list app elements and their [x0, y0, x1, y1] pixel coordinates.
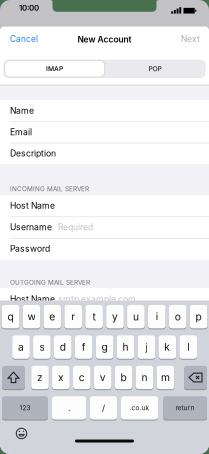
- button[interactable]: .co.uk: [121, 396, 158, 420]
- button[interactable]: w: [23, 304, 40, 329]
- staticText: r: [71, 310, 75, 323]
- staticText: p: [196, 310, 202, 323]
- staticText: 123: [19, 404, 30, 412]
- button[interactable]: u: [127, 304, 145, 329]
- button[interactable]: i: [148, 304, 166, 329]
- staticText: n: [141, 371, 147, 384]
- staticText: INCOMING MAIL SERVER: [10, 185, 89, 193]
- staticText: y: [112, 310, 118, 323]
- button[interactable]: 123: [2, 396, 48, 420]
- button[interactable]: b: [115, 365, 132, 390]
- button[interactable]: Username: [0, 0, 42, 11]
- button[interactable]: k: [158, 335, 176, 359]
- staticText: v: [100, 371, 106, 384]
- staticText: OUTGOING MAIL SERVER: [10, 279, 90, 286]
- staticText: h: [122, 341, 128, 353]
- button[interactable]: f: [75, 335, 92, 359]
- staticText: Email: [10, 127, 32, 137]
- staticText: POP: [148, 65, 161, 73]
- staticText: Username: [10, 222, 52, 232]
- staticText: .co.uk: [129, 404, 149, 412]
- button[interactable]: Delete: [184, 365, 207, 390]
- staticText: 10:00: [19, 3, 39, 13]
- staticText: smtp.example.com: [58, 294, 136, 304]
- staticText: i: [156, 310, 158, 323]
- button[interactable]: e: [43, 304, 61, 329]
- staticText: c: [79, 371, 85, 384]
- staticText: o: [175, 310, 181, 323]
- staticText: g: [102, 341, 108, 353]
- staticText: q: [7, 310, 13, 323]
- staticText: z: [37, 371, 43, 384]
- staticText: return: [175, 404, 194, 412]
- button[interactable]: z: [31, 365, 49, 390]
- button[interactable]: IMAP: [5, 61, 104, 76]
- button[interactable]: v: [94, 365, 111, 390]
- button[interactable]: Email: [0, 0, 22, 11]
- button[interactable]: x: [52, 365, 70, 390]
- button[interactable]: Next: [181, 34, 200, 44]
- staticText: Name: [10, 105, 34, 116]
- button[interactable]: Name: [0, 0, 24, 11]
- staticText: w: [27, 310, 35, 323]
- staticText: /: [102, 403, 105, 413]
- button[interactable]: Emoji: [14, 426, 28, 440]
- button[interactable]: POP: [105, 61, 205, 76]
- button[interactable]: Password: [0, 0, 40, 11]
- button[interactable]: l: [179, 335, 197, 359]
- button[interactable]: a: [12, 335, 30, 359]
- staticText: s: [39, 341, 44, 353]
- button[interactable]: Cancel: [10, 34, 38, 44]
- staticText: u: [133, 310, 139, 323]
- staticText: b: [121, 371, 127, 384]
- button[interactable]: Host Name: [0, 0, 45, 11]
- button[interactable]: d: [54, 335, 72, 359]
- button[interactable]: Host Name: [0, 0, 78, 11]
- staticText: x: [58, 371, 64, 384]
- button[interactable]: n: [136, 365, 153, 390]
- staticText: IMAP: [46, 65, 63, 73]
- button[interactable]: Shift: [2, 365, 25, 390]
- staticText: l: [187, 341, 189, 353]
- staticText: t: [93, 310, 96, 323]
- staticText: Required: [58, 222, 93, 232]
- staticText: Next: [181, 34, 200, 44]
- staticText: f: [82, 341, 86, 353]
- button[interactable]: .: [52, 396, 86, 420]
- staticText: Cancel: [10, 34, 38, 44]
- staticText: k: [164, 341, 170, 353]
- button[interactable]: p: [190, 304, 207, 329]
- button[interactable]: s: [33, 335, 51, 359]
- staticText: d: [60, 341, 66, 353]
- button[interactable]: m: [157, 365, 174, 390]
- button[interactable]: c: [73, 365, 91, 390]
- staticText: Description: [10, 148, 56, 158]
- button[interactable]: q: [2, 304, 19, 329]
- button[interactable]: r: [64, 304, 82, 329]
- staticText: Password: [10, 243, 50, 254]
- staticText: m: [161, 371, 170, 384]
- button[interactable]: h: [117, 335, 134, 359]
- staticText: .: [68, 403, 70, 413]
- staticText: Host Name: [10, 294, 55, 304]
- button[interactable]: t: [85, 304, 103, 329]
- button[interactable]: y: [106, 304, 124, 329]
- staticText: j: [145, 341, 147, 353]
- staticText: e: [49, 310, 55, 323]
- staticText: New Account: [77, 34, 131, 45]
- button[interactable]: /: [90, 396, 117, 420]
- button[interactable]: j: [138, 335, 155, 359]
- button[interactable]: return: [163, 396, 207, 420]
- button[interactable]: o: [169, 304, 186, 329]
- button[interactable]: Description: [0, 0, 46, 11]
- button[interactable]: g: [96, 335, 113, 359]
- staticText: a: [18, 341, 24, 353]
- staticText: Host Name: [10, 200, 55, 211]
